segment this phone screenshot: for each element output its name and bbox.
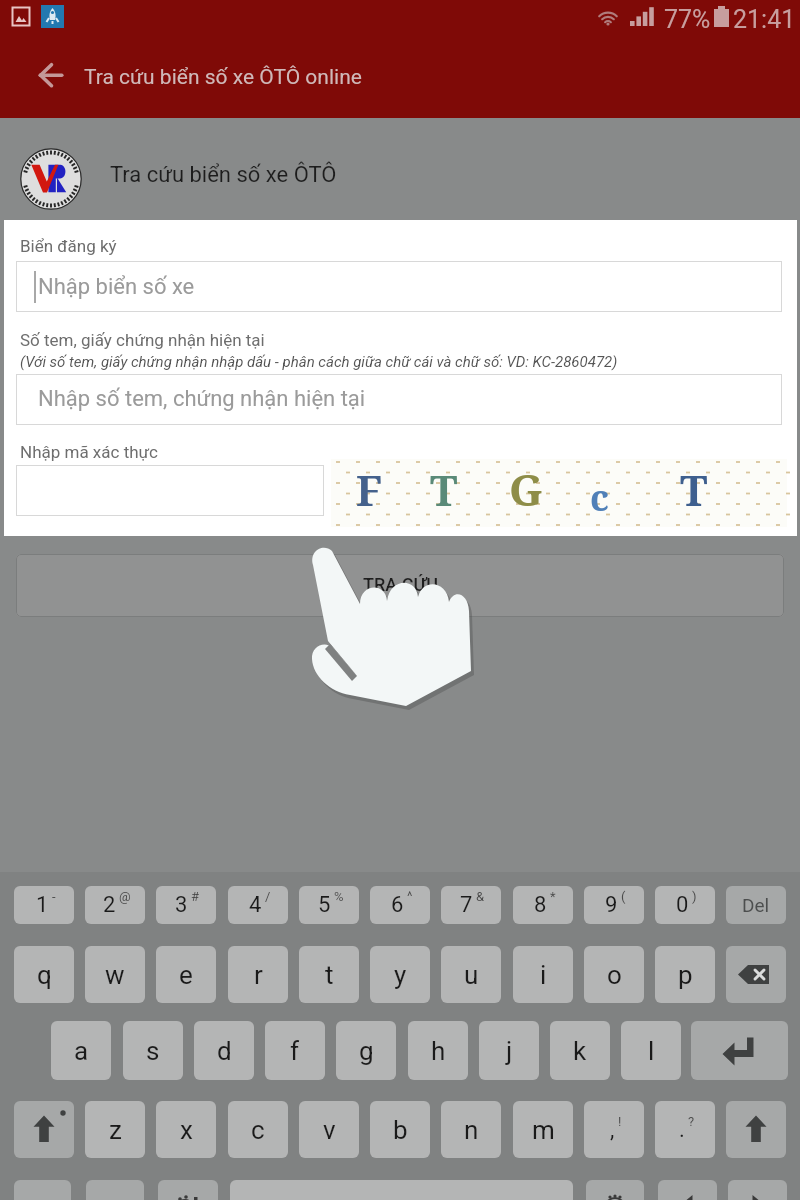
button[interactable]: u xyxy=(441,946,501,1003)
staticText: x xyxy=(180,1115,193,1145)
button[interactable]: l xyxy=(621,1021,681,1080)
staticText: 0 xyxy=(676,892,689,918)
button[interactable]: 8 xyxy=(513,886,573,924)
button[interactable]: 9 xyxy=(584,886,644,924)
button[interactable]: q xyxy=(14,946,74,1003)
staticText: s xyxy=(146,1036,160,1066)
staticText: - xyxy=(52,889,56,904)
staticText: u xyxy=(464,960,479,990)
staticText: i xyxy=(540,960,547,990)
button[interactable]: 5 xyxy=(299,886,359,924)
button[interactable] xyxy=(586,1180,644,1200)
staticText: Nhập mã xác thực xyxy=(20,442,159,462)
button[interactable] xyxy=(14,1180,71,1200)
staticText: 8 xyxy=(534,892,547,918)
staticText: 6 xyxy=(391,892,404,918)
button[interactable]: c xyxy=(228,1101,288,1158)
staticText: , xyxy=(610,1117,615,1143)
button[interactable]: k xyxy=(550,1021,610,1080)
staticText: g xyxy=(359,1036,374,1066)
staticText: l xyxy=(648,1036,655,1066)
button[interactable] xyxy=(726,946,786,1003)
button[interactable]: r xyxy=(228,946,288,1003)
staticText: w xyxy=(105,960,125,990)
button[interactable]: b xyxy=(370,1101,430,1158)
staticText: / xyxy=(265,889,271,904)
button[interactable]: a xyxy=(51,1021,111,1080)
staticText: 5 xyxy=(318,892,331,918)
button[interactable] xyxy=(14,1101,74,1158)
button[interactable]: m xyxy=(513,1101,573,1158)
staticText: ^ xyxy=(407,889,413,904)
button[interactable]: t xyxy=(299,946,359,1003)
button[interactable]: , xyxy=(584,1101,644,1158)
staticText: (Với số tem, giấy chứng nhận nhập dấu - … xyxy=(20,353,618,371)
button[interactable]: p xyxy=(655,946,715,1003)
button[interactable] xyxy=(726,1101,786,1158)
staticText: ! xyxy=(618,1114,622,1129)
button[interactable]: g xyxy=(336,1021,396,1080)
staticText: Nhập số tem, chứng nhận hiện tại xyxy=(38,386,366,412)
button[interactable]: x xyxy=(156,1101,216,1158)
staticText: z xyxy=(109,1115,122,1145)
button[interactable]: n xyxy=(441,1101,501,1158)
staticText: Nhập biển số xe xyxy=(38,274,195,300)
button[interactable] xyxy=(16,465,324,516)
button[interactable]: h xyxy=(408,1021,468,1080)
staticText: c xyxy=(251,1115,265,1145)
staticText: Số tem, giấy chứng nhận hiện tại xyxy=(20,330,265,350)
staticText: 1 xyxy=(36,892,49,918)
staticText: d xyxy=(217,1036,232,1066)
staticText: 9 xyxy=(605,892,618,918)
button[interactable]: Back xyxy=(24,49,78,103)
staticText: # xyxy=(191,889,200,904)
button[interactable]: f xyxy=(265,1021,325,1080)
button[interactable] xyxy=(158,1180,218,1200)
button[interactable]: 4 xyxy=(228,886,288,924)
staticText: Biển đăng ký xyxy=(20,236,117,256)
staticText: v xyxy=(323,1115,336,1145)
button[interactable]: Del xyxy=(726,886,786,924)
button[interactable]: 2 xyxy=(85,886,145,924)
button[interactable]: 1 xyxy=(14,886,74,924)
staticText: F xyxy=(356,461,383,518)
staticText: 7 xyxy=(460,892,473,918)
button[interactable]: w xyxy=(85,946,145,1003)
button[interactable]: v xyxy=(299,1101,359,1158)
button[interactable]: d xyxy=(194,1021,254,1080)
staticText: p xyxy=(678,960,693,990)
button[interactable]: s xyxy=(123,1021,183,1080)
staticText: f xyxy=(290,1036,300,1066)
button[interactable]: . xyxy=(655,1101,715,1158)
staticText: ) xyxy=(692,889,697,904)
button[interactable]: e xyxy=(156,946,216,1003)
button[interactable] xyxy=(658,1180,717,1200)
button[interactable]: Nhập biển số xe xyxy=(16,261,782,312)
staticText: q xyxy=(37,960,52,990)
staticText: 4 xyxy=(249,892,262,918)
button[interactable]: 6 xyxy=(370,886,430,924)
button[interactable]: 3 xyxy=(156,886,216,924)
button[interactable]: j xyxy=(479,1021,539,1080)
button[interactable]: z xyxy=(85,1101,145,1158)
button[interactable]: i xyxy=(513,946,573,1003)
staticText: T xyxy=(680,461,708,518)
button[interactable] xyxy=(728,1180,787,1200)
staticText: c xyxy=(590,473,609,522)
button[interactable]: Nhập số tem, chứng nhận hiện tại xyxy=(16,374,782,425)
staticText: Del xyxy=(742,894,770,916)
button[interactable] xyxy=(691,1021,788,1080)
button[interactable]: 7 xyxy=(441,886,501,924)
staticText: & xyxy=(476,889,485,904)
button[interactable]: o xyxy=(584,946,644,1003)
button[interactable]: y xyxy=(370,946,430,1003)
staticText: TRA CỨU xyxy=(363,574,438,595)
button[interactable] xyxy=(86,1180,144,1200)
staticText: y xyxy=(394,960,407,990)
button[interactable]: TRA CỨU xyxy=(16,554,784,617)
staticText: 21:41 xyxy=(733,5,796,34)
staticText: h xyxy=(431,1036,446,1066)
button[interactable]: 0 xyxy=(655,886,715,924)
staticText: e xyxy=(179,960,193,990)
